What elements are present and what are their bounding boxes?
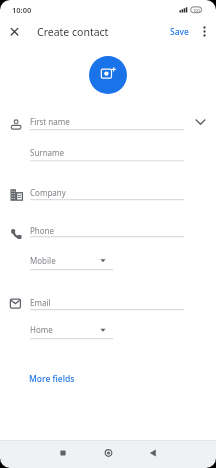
- staticText: Email: [30, 297, 51, 308]
- staticText: Create contact: [37, 25, 109, 39]
- staticText: Phone: [30, 225, 55, 236]
- staticText: Mobile: [30, 255, 56, 266]
- staticText: More fields: [29, 373, 75, 385]
- staticText: 10:00: [12, 5, 32, 15]
- staticText: Surname: [30, 147, 65, 158]
- button[interactable]: [89, 56, 127, 94]
- staticText: Company: [30, 187, 66, 198]
- button[interactable]: Save: [170, 24, 189, 40]
- staticText: Save: [170, 26, 189, 38]
- button[interactable]: More fields: [29, 371, 75, 387]
- staticText: 100: [193, 8, 200, 13]
- staticText: First name: [30, 116, 70, 127]
- button[interactable]: [72, 440, 144, 468]
- button[interactable]: [6, 23, 23, 40]
- button[interactable]: [0, 440, 72, 468]
- button[interactable]: [190, 112, 211, 133]
- button[interactable]: [28, 250, 114, 271]
- button[interactable]: [199, 23, 210, 40]
- button[interactable]: [144, 440, 216, 468]
- staticText: Home: [30, 324, 53, 335]
- button[interactable]: [28, 319, 114, 340]
